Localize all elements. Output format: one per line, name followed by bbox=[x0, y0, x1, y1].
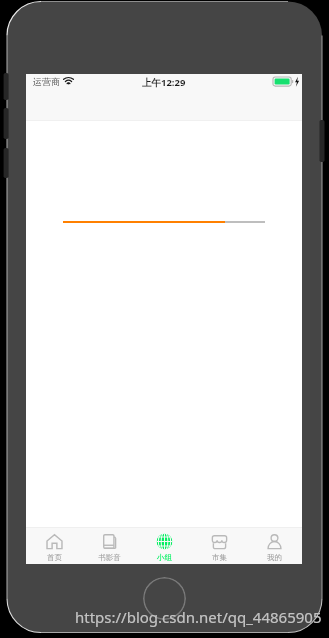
button[interactable]: 市集 bbox=[192, 527, 247, 562]
staticText: 首页 bbox=[47, 553, 62, 562]
button[interactable]: 小组 bbox=[137, 527, 192, 562]
button[interactable]: 我的 bbox=[247, 527, 302, 562]
staticText: https://blog.csdn.net/qq_44865905 bbox=[75, 607, 322, 627]
staticText: 上午12:29 bbox=[142, 76, 186, 89]
staticText: 书影音 bbox=[98, 553, 121, 562]
button[interactable]: 书影音 bbox=[82, 527, 137, 562]
staticText: 我的 bbox=[267, 553, 282, 562]
button[interactable]: 首页 bbox=[26, 527, 82, 562]
button[interactable]: Home bbox=[143, 577, 186, 620]
staticText: 市集 bbox=[212, 553, 227, 562]
staticText: 运营商 bbox=[33, 76, 60, 87]
staticText: 小组 bbox=[157, 553, 172, 562]
